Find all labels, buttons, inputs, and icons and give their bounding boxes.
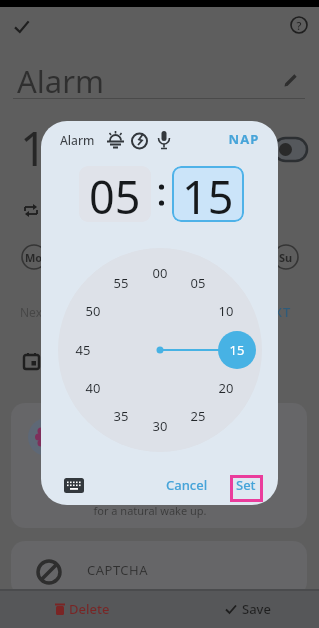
button[interactable]: 05	[79, 166, 151, 222]
staticText: Su	[279, 250, 293, 265]
button[interactable]: 15	[172, 166, 244, 222]
staticText: XT	[274, 303, 314, 321]
staticText: Next	[20, 304, 80, 320]
button[interactable]: Delete	[55, 600, 110, 618]
staticText: 15	[222, 341, 252, 359]
staticText: Delete	[69, 600, 110, 618]
staticText: 25	[183, 407, 213, 425]
button[interactable]	[64, 478, 84, 493]
button[interactable]: Cancel	[159, 474, 214, 496]
button[interactable]: Set	[229, 474, 263, 496]
staticText: 40	[78, 379, 108, 397]
staticText: NAP	[226, 130, 262, 148]
staticText: 15	[182, 166, 234, 222]
staticText: 50	[78, 302, 108, 320]
staticText: 05	[183, 274, 213, 292]
staticText: 05	[89, 166, 141, 222]
button[interactable]: NAP	[226, 130, 262, 150]
staticText: 55	[106, 274, 136, 292]
staticText: Set	[236, 476, 256, 494]
staticText: 1	[20, 116, 80, 180]
button[interactable]: CAPTCHA	[11, 541, 307, 596]
button[interactable]	[274, 138, 307, 161]
button[interactable]	[13, 18, 30, 35]
button[interactable]: Mo	[22, 245, 46, 269]
staticText: Mo	[25, 250, 43, 265]
staticText: 20	[211, 379, 241, 397]
staticText: Alarm	[60, 132, 120, 148]
staticText: Save	[242, 600, 271, 618]
staticText: Alarm	[17, 60, 157, 102]
button[interactable]: Save	[225, 600, 271, 618]
staticText: for a natural wake up.	[41, 503, 259, 518]
staticText: 10	[211, 302, 241, 320]
staticText: 45	[68, 341, 98, 359]
staticText: 00	[145, 264, 175, 282]
staticText: 35	[106, 407, 136, 425]
staticText: ?	[290, 18, 308, 33]
button[interactable]: ?	[290, 16, 308, 34]
button[interactable]: Su	[274, 245, 298, 269]
staticText: 30	[145, 417, 175, 435]
staticText: CAPTCHA	[87, 561, 197, 579]
staticText: Cancel	[166, 476, 208, 494]
